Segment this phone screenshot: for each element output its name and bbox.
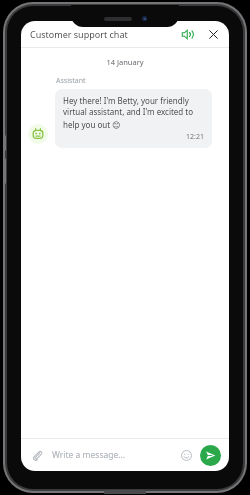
button[interactable]: Hey there! I'm Betty, your friendly virt…: [55, 89, 212, 148]
button[interactable]: Send: [200, 445, 221, 466]
staticText: Write a message...: [52, 449, 178, 461]
button[interactable]: Emoji: [178, 447, 194, 463]
button[interactable]: Close: [204, 25, 222, 43]
staticText: Hey there! I'm Betty, your friendly virt…: [63, 95, 204, 130]
staticText: 14 January: [21, 57, 229, 67]
button[interactable]: Attach file: [29, 447, 45, 463]
staticText: 12:21: [63, 132, 204, 142]
staticText: Customer support chat: [30, 28, 128, 40]
button[interactable]: Toggle sound: [178, 25, 196, 43]
staticText: Assistant: [56, 76, 86, 86]
